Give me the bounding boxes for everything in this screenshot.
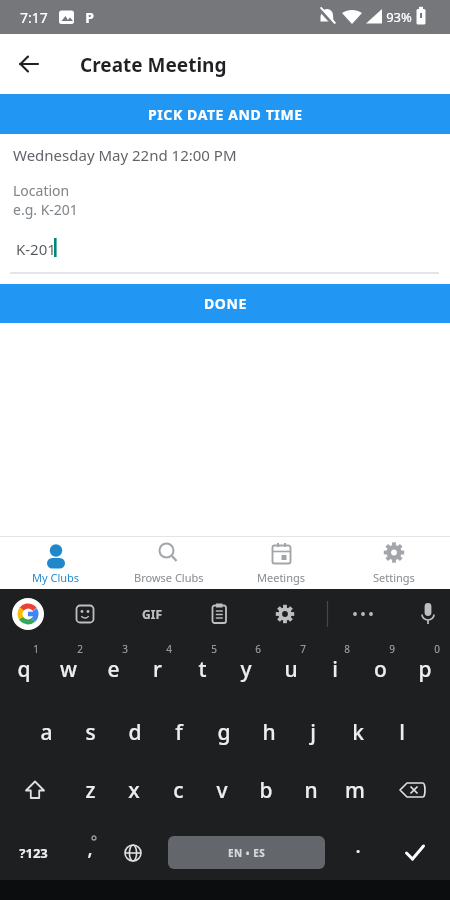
button[interactable]: a (26, 716, 66, 748)
staticText: P (85, 8, 94, 27)
staticText: Meetings (257, 570, 306, 585)
staticText: 3 (122, 642, 128, 656)
staticText: x (128, 776, 140, 805)
staticText: 9 (389, 642, 395, 656)
button[interactable] (10, 45, 48, 83)
staticText: 0 (434, 642, 440, 656)
staticText: t (198, 655, 207, 684)
button[interactable]: l (382, 716, 422, 748)
button[interactable]: m (335, 774, 375, 806)
button[interactable]: h (249, 716, 289, 748)
button[interactable]: p (405, 653, 445, 685)
button[interactable]: Browse Clubs (112, 537, 225, 589)
staticText: e.g. K-201 (13, 200, 78, 219)
staticText: e (107, 655, 120, 684)
staticText: 6 (255, 642, 261, 656)
staticText: u (284, 655, 298, 684)
staticText: l (399, 718, 405, 747)
button[interactable]: t (182, 653, 222, 685)
staticText: . (355, 833, 361, 859)
staticText: f (175, 718, 183, 747)
staticText: z (85, 776, 96, 805)
staticText: i (332, 655, 338, 684)
button[interactable] (205, 600, 233, 628)
button[interactable]: q (4, 653, 44, 685)
staticText: 93% (386, 8, 412, 26)
button[interactable]: Settings (338, 537, 450, 589)
staticText: p (418, 655, 432, 684)
staticText: d (128, 718, 142, 747)
button[interactable] (20, 776, 50, 804)
staticText: EN • ES (228, 846, 266, 860)
button[interactable]: n (291, 774, 331, 806)
button[interactable]: EN • ES (168, 836, 325, 869)
button[interactable] (413, 600, 443, 628)
button[interactable]: , (75, 832, 105, 864)
staticText: b (259, 776, 273, 805)
button[interactable]: My Clubs (0, 537, 112, 589)
button[interactable]: s (70, 716, 110, 748)
staticText: Location (13, 181, 70, 200)
button[interactable]: b (246, 774, 286, 806)
button[interactable] (271, 600, 299, 628)
button[interactable]: j (293, 716, 333, 748)
staticText: GIF (142, 606, 162, 622)
staticText: r (153, 655, 162, 684)
staticText: DONE (204, 294, 247, 313)
button[interactable]: u (271, 653, 311, 685)
button[interactable]: g (204, 716, 244, 748)
staticText: My Clubs (32, 570, 80, 585)
button[interactable]: PICK DATE AND TIME (0, 94, 450, 134)
button[interactable] (348, 600, 378, 628)
staticText: q (17, 655, 31, 684)
staticText: w (60, 655, 77, 684)
staticText: c (173, 776, 184, 805)
button[interactable]: f (159, 716, 199, 748)
button[interactable] (12, 598, 44, 630)
button[interactable]: v (202, 774, 242, 806)
staticText: 8 (344, 642, 350, 656)
button[interactable]: Meetings (225, 537, 338, 589)
staticText: k (352, 718, 364, 747)
staticText: 7:17 (20, 8, 48, 27)
button[interactable]: DONE (0, 284, 450, 323)
staticText: 7 (300, 642, 306, 656)
button[interactable]: e (93, 653, 133, 685)
staticText: y (240, 655, 252, 684)
button[interactable] (119, 839, 147, 867)
staticText: 1 (33, 642, 39, 656)
button[interactable]: GIF (127, 598, 177, 630)
staticText: PICK DATE AND TIME (148, 105, 303, 124)
staticText: Create Meeting (80, 52, 227, 78)
button[interactable]: o (360, 653, 400, 685)
staticText: g (217, 718, 231, 747)
staticText: m (345, 776, 365, 805)
button[interactable] (400, 839, 430, 867)
button[interactable]: d (115, 716, 155, 748)
button[interactable]: k (338, 716, 378, 748)
button[interactable]: . (343, 830, 373, 862)
button[interactable]: c (158, 774, 198, 806)
staticText: 4 (166, 642, 172, 656)
button[interactable]: w (48, 653, 88, 685)
staticText: s (85, 718, 96, 747)
button[interactable]: x (114, 774, 154, 806)
button[interactable]: r (137, 653, 177, 685)
button[interactable]: i (315, 653, 355, 685)
button[interactable]: z (70, 774, 110, 806)
button[interactable]: ?123 (8, 837, 58, 869)
button[interactable] (71, 600, 99, 628)
staticText: Settings (373, 570, 415, 585)
staticText: j (310, 718, 316, 747)
staticText: K-201 (16, 239, 56, 259)
staticText: 2 (77, 642, 83, 656)
staticText: v (216, 776, 228, 805)
button[interactable] (396, 776, 430, 804)
staticText: Wednesday May 22nd 12:00 PM (13, 145, 237, 165)
staticText: h (262, 718, 276, 747)
button[interactable]: y (226, 653, 266, 685)
staticText: n (304, 776, 318, 805)
staticText: , (87, 835, 93, 861)
staticText: 5 (211, 642, 217, 656)
staticText: Browse Clubs (134, 570, 204, 585)
